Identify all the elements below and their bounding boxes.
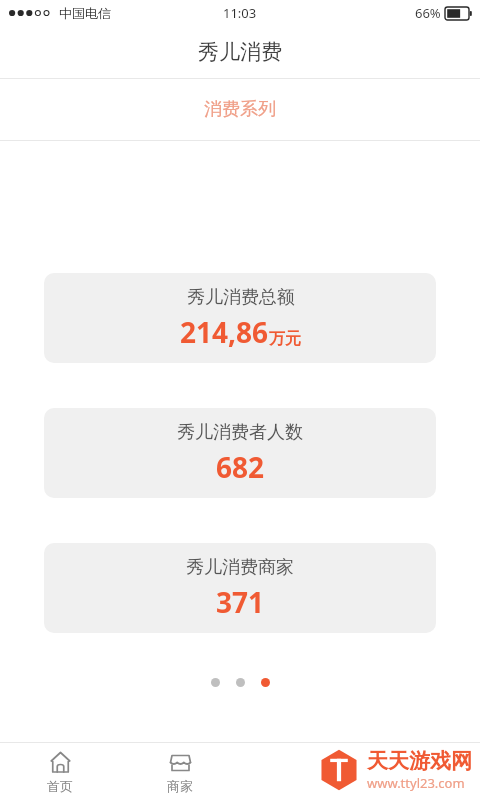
staticText: 秀儿消费者人数 <box>177 421 303 444</box>
button[interactable]: 消费系列 <box>0 79 480 140</box>
staticText: 消费系列 <box>204 98 276 121</box>
staticText: 秀儿消费商家 <box>186 556 294 579</box>
button[interactable]: Page 3 <box>261 678 270 687</box>
button[interactable]: 秀儿消费总额 <box>44 273 436 363</box>
staticText: 682 <box>216 448 265 486</box>
button[interactable]: Page 1 <box>211 678 220 687</box>
staticText: 商家 <box>167 778 193 794</box>
staticText: 66% <box>415 4 441 22</box>
staticText: 371 <box>216 583 265 621</box>
button[interactable]: 秀儿消费者人数 <box>44 408 436 498</box>
staticText: 214,86 <box>180 313 269 351</box>
staticText: 天天游戏网 <box>367 748 472 774</box>
button[interactable]: 首页 <box>0 745 120 799</box>
staticText: www.ttyl23.com <box>367 774 465 792</box>
button[interactable]: 商家 <box>120 745 240 799</box>
staticText: 秀儿消费 <box>198 39 282 65</box>
staticText: 秀儿消费总额 <box>187 286 295 309</box>
staticText: 万元 <box>269 329 301 349</box>
button[interactable]: Page 2 <box>236 678 245 687</box>
staticText: 中国电信 <box>59 5 111 21</box>
staticText: 11:03 <box>223 4 257 22</box>
staticText: 首页 <box>47 778 73 794</box>
button[interactable]: 秀儿消费商家 <box>44 543 436 633</box>
